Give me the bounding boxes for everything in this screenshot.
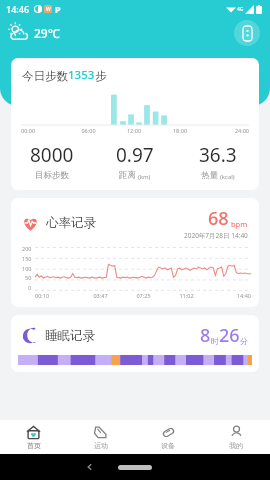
staticText: 07:25 [122, 292, 165, 299]
staticText: 68 [208, 206, 229, 231]
staticText: 步 [95, 69, 107, 83]
staticText: 200 [22, 245, 32, 252]
staticText: 12:00 [111, 127, 157, 134]
staticText: 我的 [229, 441, 243, 450]
staticText: 0.97 [116, 142, 154, 168]
staticText: 24:00 [203, 127, 249, 134]
staticText: 分 [240, 336, 248, 346]
staticText: 今日步数 [22, 69, 68, 83]
staticText: 00:10 [35, 292, 79, 299]
button[interactable]: My device [234, 20, 260, 46]
staticText: 100 [22, 265, 32, 272]
staticText: 11:02 [165, 292, 208, 299]
staticText: 50 [25, 274, 32, 281]
button[interactable]: 8000 [11, 142, 93, 181]
staticText: 运动 [94, 441, 108, 450]
staticText: 14:40 [208, 292, 251, 299]
staticText: 18:00 [157, 127, 203, 134]
button[interactable]: 我的 [202, 420, 270, 454]
staticText: 2020年7月28日 14:40 [184, 231, 248, 240]
staticText: 4G [237, 6, 244, 13]
staticText: 14:46 [6, 3, 30, 15]
staticText: 00:00 [21, 127, 66, 134]
button[interactable]: 0.97 [93, 142, 176, 181]
staticText: 1353 [68, 67, 95, 83]
button[interactable]: 首页 [0, 420, 67, 454]
staticText: 03:47 [79, 292, 122, 299]
staticText: 8000 [30, 142, 74, 168]
staticText: 06:00 [66, 127, 111, 134]
staticText: 距离 [119, 170, 136, 181]
staticText: 睡眠记录 [45, 328, 95, 344]
staticText: W [46, 6, 51, 13]
staticText: P [55, 3, 61, 15]
staticText: 29℃ [34, 25, 60, 41]
staticText: 36.3 [199, 142, 237, 168]
button[interactable]: 36.3 [176, 142, 259, 181]
button[interactable]: 运动 [67, 420, 134, 454]
staticText: (kcal) [220, 173, 235, 181]
staticText: 0 [28, 284, 32, 291]
staticText: (km) [138, 173, 151, 181]
staticText: 目标步数 [35, 170, 69, 181]
button[interactable]: 设备 [134, 420, 202, 454]
staticText: 时 [211, 336, 219, 346]
staticText: 26 [219, 323, 240, 348]
staticText: bpm [231, 219, 248, 229]
staticText: 设备 [161, 441, 175, 450]
staticText: 热量 [201, 170, 218, 181]
staticText: 心率记录 [46, 215, 96, 231]
staticText: 8 [200, 323, 211, 348]
staticText: 首页 [27, 441, 41, 450]
staticText: 150 [22, 255, 32, 262]
